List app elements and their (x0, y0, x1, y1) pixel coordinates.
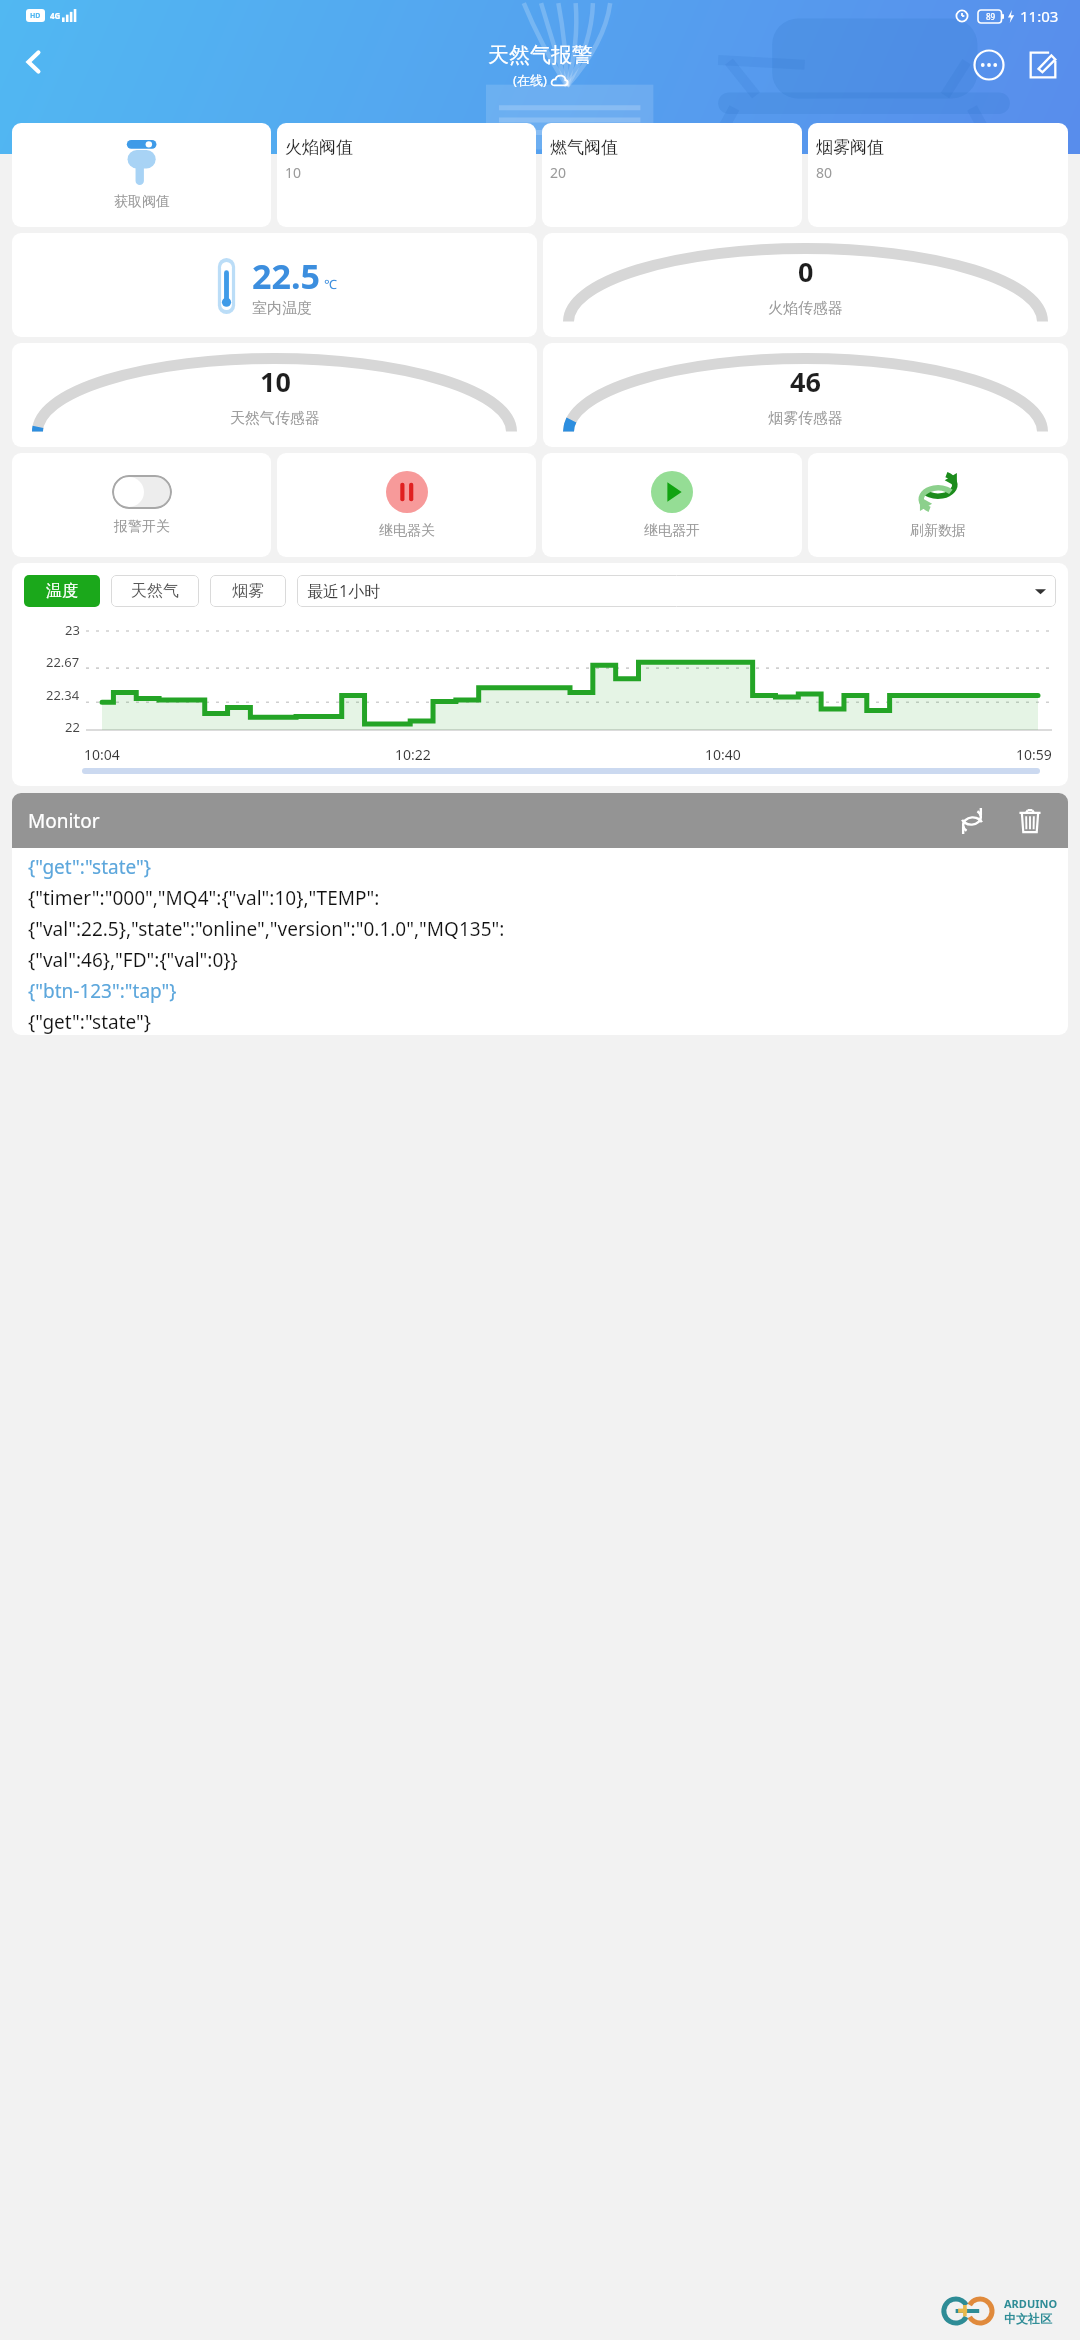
staticText: 11:03 (1020, 6, 1059, 26)
staticText: 天然气传感器 (230, 409, 320, 428)
staticText: {"get":"state"} (28, 854, 152, 880)
staticText: 火焰阀值 (285, 137, 353, 158)
staticText: 0 (798, 253, 814, 290)
staticText: 89 (986, 11, 996, 22)
staticText: ARDUINO (1004, 2296, 1058, 2311)
staticText: 继电器关 (379, 522, 435, 540)
staticText: 22.67 (46, 653, 80, 671)
staticText: 22.34 (46, 686, 80, 704)
staticText: 烟雾阀值 (816, 137, 884, 158)
staticText: 天然气 (131, 581, 179, 601)
staticText: 10:59 (1016, 745, 1052, 764)
staticText: 23 (65, 621, 80, 639)
staticText: 80 (816, 163, 833, 182)
staticText: 中文社区 (1004, 2311, 1052, 2326)
staticText: 烟雾 (232, 581, 264, 601)
staticText: 10 (260, 363, 291, 400)
staticText: 10:22 (395, 745, 431, 764)
staticText: 4G (50, 10, 61, 21)
staticText: {"val":22.5},"state":"online","version":… (28, 916, 505, 942)
staticText: 10:04 (84, 745, 120, 764)
staticText: 最近1小时 (307, 580, 381, 602)
staticText: 继电器开 (644, 522, 700, 540)
button[interactable]: Refresh (950, 799, 994, 843)
staticText: 10:40 (705, 745, 741, 764)
staticText: {"get":"state"} (28, 1009, 152, 1035)
button[interactable]: 报警开关 (12, 453, 271, 557)
button[interactable]: 46 (543, 343, 1068, 447)
staticText: 燃气阀值 (550, 137, 618, 158)
staticText: 温度 (46, 581, 78, 601)
staticText: {"timer":"000","MQ4":{"val":10},"TEMP": (28, 885, 380, 911)
staticText: {"val":46},"FD":{"val":0}} (28, 947, 238, 973)
staticText: {"btn-123":"tap"} (28, 978, 177, 1004)
staticText: 刷新数据 (910, 522, 966, 540)
staticText: 22.5 (252, 253, 320, 299)
button[interactable]: Edit (1020, 42, 1066, 88)
button[interactable]: 刷新数据 (808, 453, 1068, 557)
button[interactable]: 天然气 (111, 575, 199, 607)
staticText: 获取阀值 (114, 193, 170, 211)
button[interactable]: 火焰阀值 (277, 123, 536, 227)
button[interactable]: 烟雾 (210, 575, 286, 607)
button[interactable]: 燃气阀值 (542, 123, 802, 227)
button[interactable]: 烟雾阀值 (808, 123, 1068, 227)
staticText: ℃ (324, 275, 337, 293)
button[interactable]: 继电器关 (277, 453, 536, 557)
button[interactable]: More (966, 42, 1012, 88)
button[interactable]: Delete (1008, 799, 1052, 843)
staticText: 火焰传感器 (768, 299, 843, 318)
button[interactable]: 温度 (24, 575, 100, 607)
staticText: (在线) (513, 71, 547, 89)
staticText: 20 (550, 163, 567, 182)
staticText: 46 (790, 363, 821, 400)
staticText: 10 (285, 163, 302, 182)
button[interactable]: 获取阀值 (12, 123, 271, 227)
button[interactable]: 22.5 (12, 233, 537, 337)
staticText: 22 (65, 718, 80, 736)
button[interactable]: 继电器开 (542, 453, 802, 557)
staticText: 烟雾传感器 (768, 409, 843, 428)
button[interactable]: 0 (543, 233, 1068, 337)
staticText: 报警开关 (114, 518, 170, 536)
button[interactable]: 10 (12, 343, 537, 447)
button[interactable]: 最近1小时 (297, 575, 1056, 607)
staticText: HD (30, 11, 41, 21)
staticText: 天然气报警 (488, 42, 593, 68)
staticText: Monitor (28, 808, 100, 834)
button[interactable]: Back (10, 38, 58, 86)
staticText: 室内温度 (252, 299, 312, 318)
